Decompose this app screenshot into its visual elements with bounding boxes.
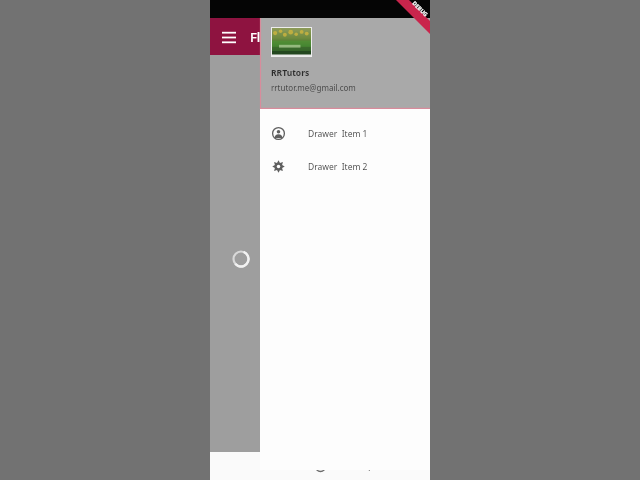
button[interactable]: Home [308, 454, 332, 478]
staticText: Flutter Demo [250, 28, 333, 46]
staticText: DEBUG [411, 0, 430, 18]
staticText: Drawer Item 1 [308, 128, 368, 140]
staticText: RRTutors [271, 67, 310, 79]
button[interactable]: Drawer Item 1 [260, 117, 430, 150]
button[interactable]: Back [354, 454, 378, 478]
button[interactable]: Open navigation drawer [214, 22, 244, 52]
staticText: Drawer Item 2 [308, 161, 368, 173]
staticText: rrtutor.me@gmail.com [271, 82, 356, 93]
button[interactable]: Drawer Item 2 [260, 150, 430, 183]
